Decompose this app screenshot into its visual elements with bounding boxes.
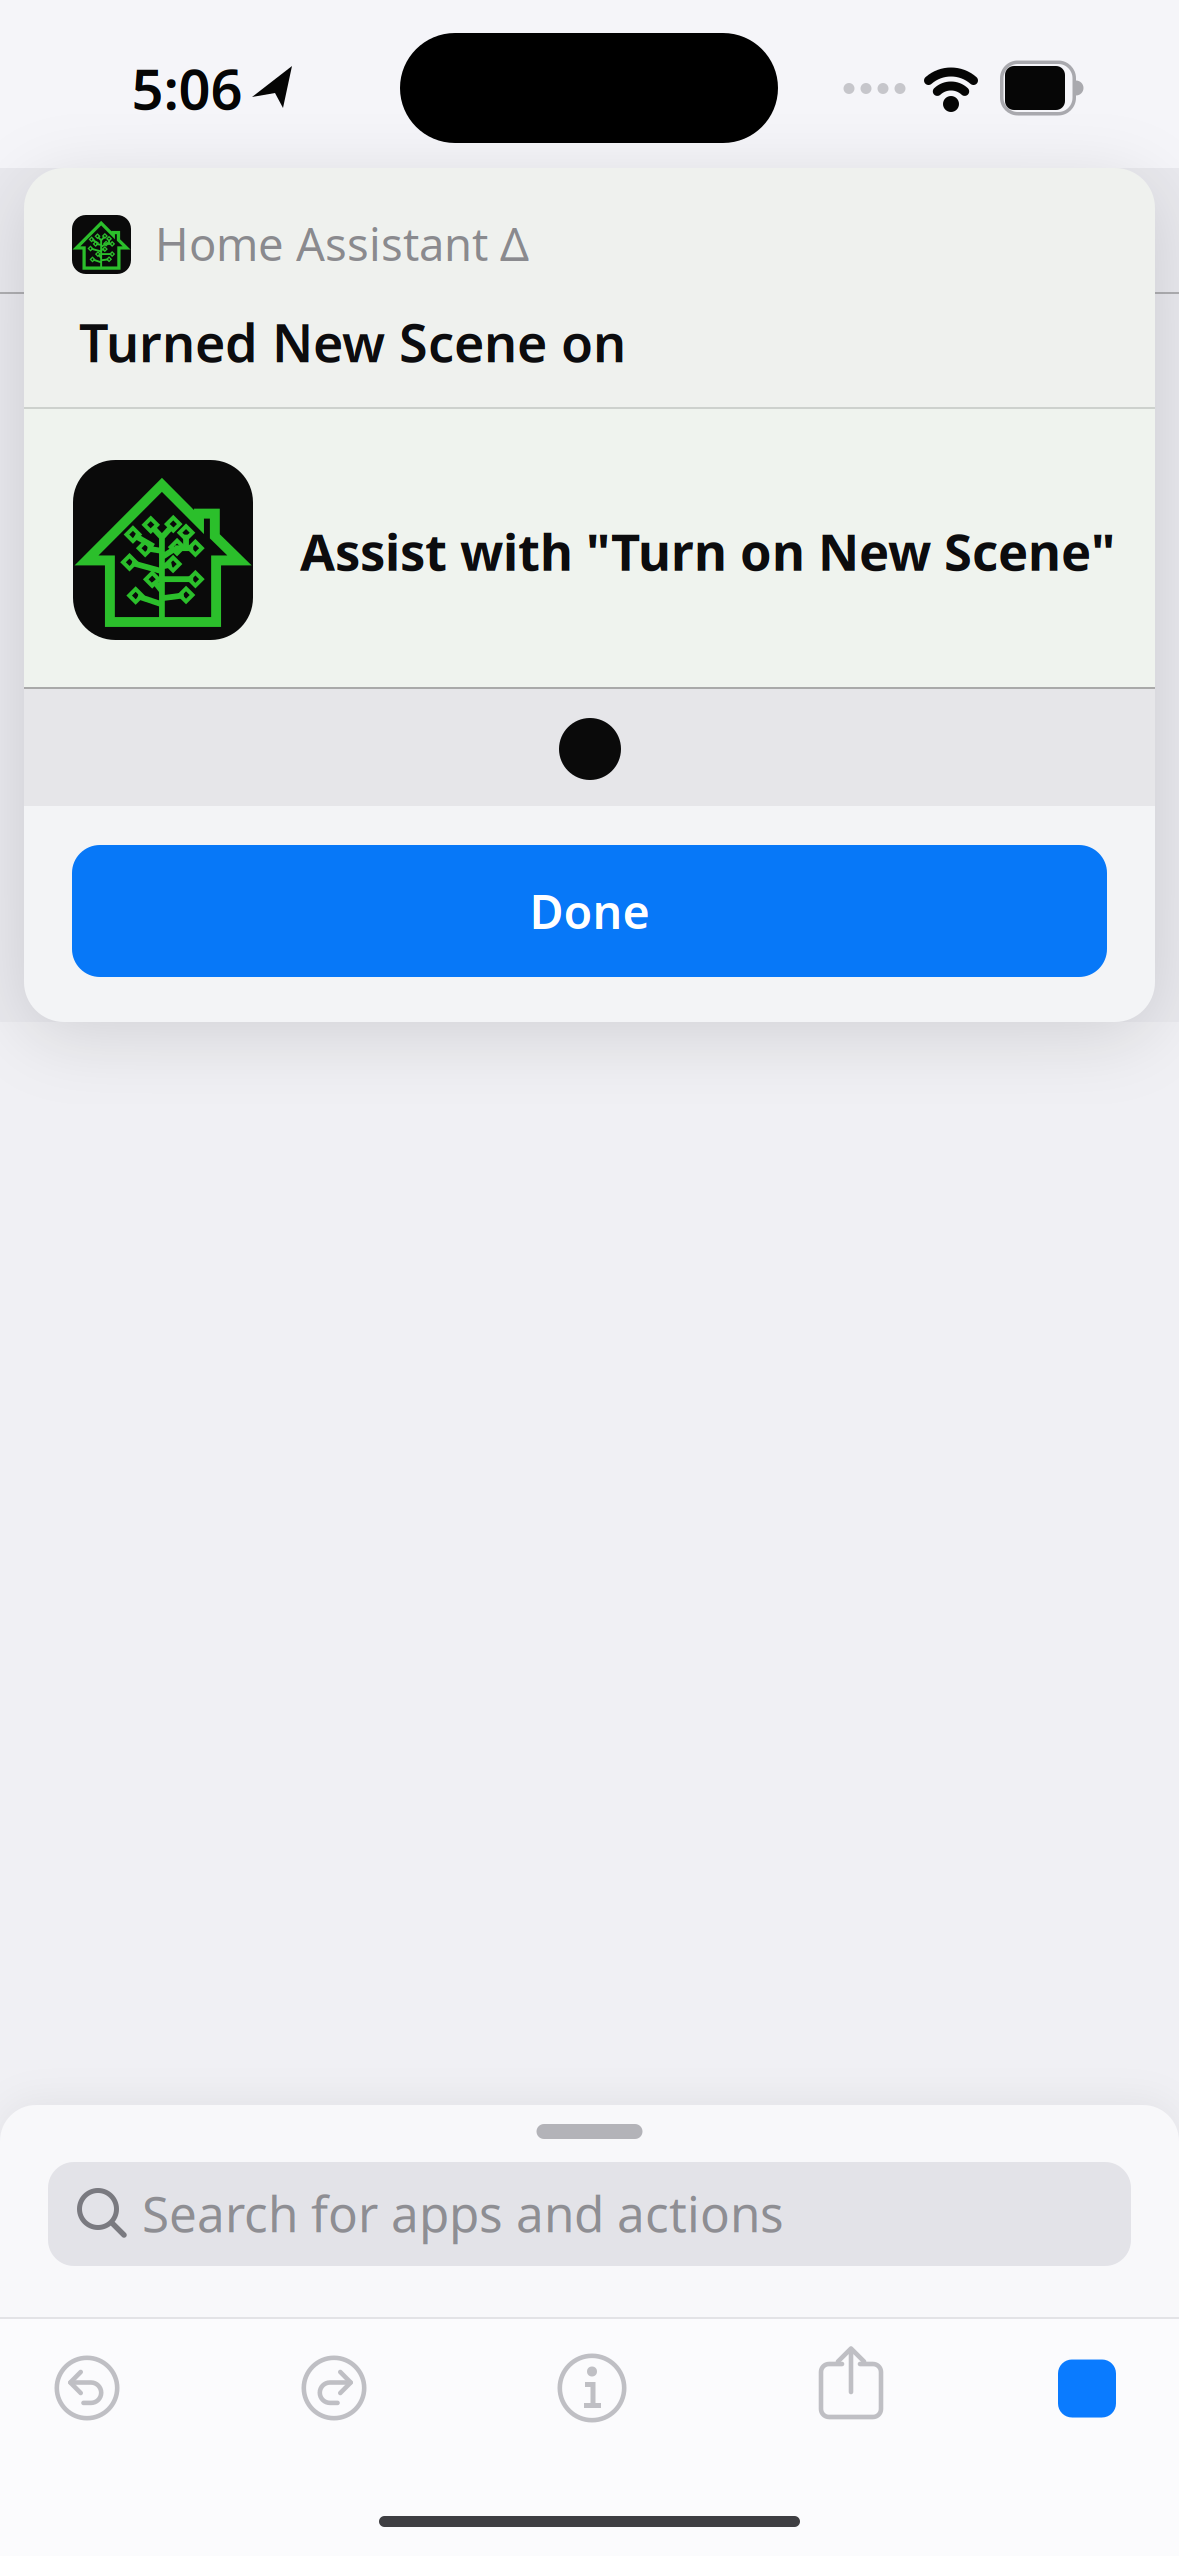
button[interactable]: Search for apps and actions xyxy=(48,2162,1131,2266)
button[interactable]: Share xyxy=(811,2347,891,2427)
button[interactable]: Color xyxy=(1058,2359,1116,2417)
button[interactable]: Redo xyxy=(297,2351,371,2425)
staticText: 5:06 xyxy=(131,51,242,125)
staticText: Done xyxy=(529,880,649,942)
staticText: Turned New Scene on xyxy=(79,307,626,377)
staticText: Home Assistant Δ xyxy=(155,213,529,274)
staticText: Search for apps and actions xyxy=(142,2180,784,2246)
staticText: Assist with "Turn on New Scene" xyxy=(300,517,1115,585)
button[interactable]: Info xyxy=(555,2351,629,2425)
button[interactable]: Done xyxy=(72,845,1107,977)
button[interactable]: Undo xyxy=(50,2351,124,2425)
